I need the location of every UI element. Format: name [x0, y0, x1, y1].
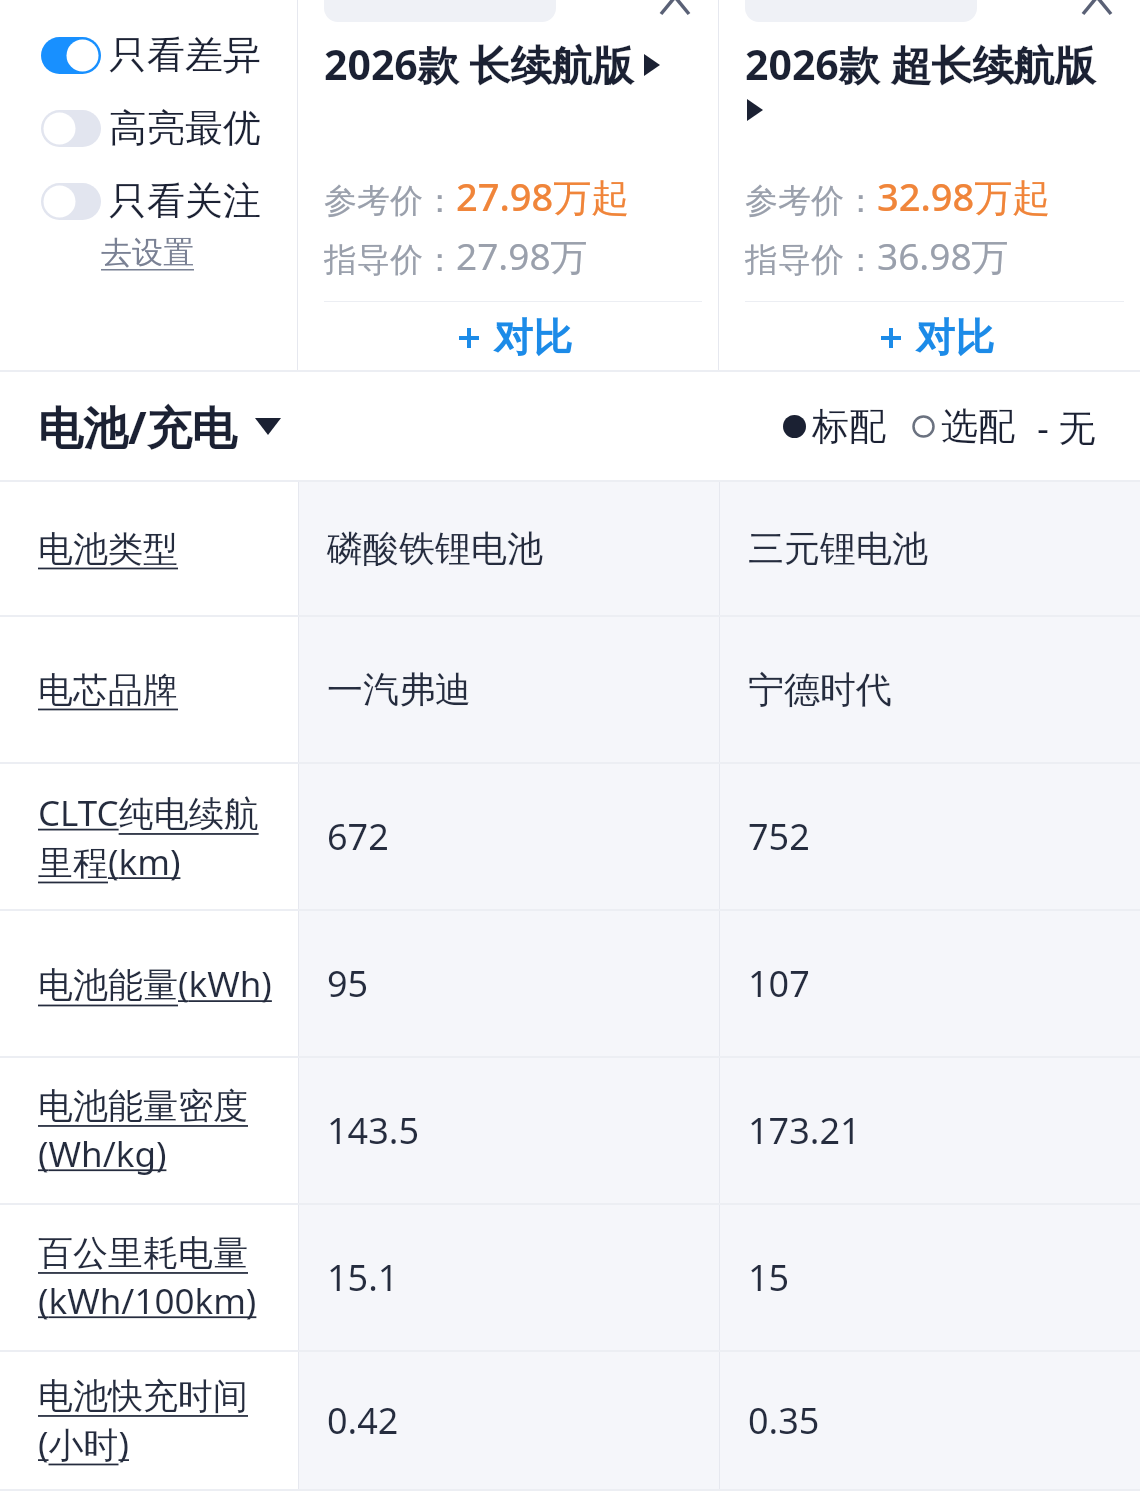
staticText: - 无 — [1037, 401, 1096, 452]
button[interactable]: 关闭 — [652, 0, 698, 46]
staticText: 高亮最优 — [109, 104, 261, 152]
staticText: 27.98万起 — [456, 170, 630, 222]
staticText: 对比 — [916, 313, 994, 362]
staticText: 15 — [748, 1253, 790, 1302]
staticText: 百公里耗电量(kWh/100km) — [38, 1231, 286, 1324]
staticText: 电池/充电 — [38, 396, 237, 457]
button[interactable]: 电池类型 — [0, 482, 298, 615]
button[interactable]: 电池快充时间(小时) — [0, 1352, 298, 1489]
staticText: 电池快充时间(小时) — [38, 1374, 286, 1467]
button[interactable]: 高亮最优 — [41, 104, 261, 152]
staticText: 磷酸铁锂电池 — [327, 526, 543, 571]
staticText: 0.35 — [748, 1396, 820, 1445]
button[interactable]: 电池能量(kWh) — [0, 911, 298, 1056]
staticText: 752 — [748, 812, 810, 861]
staticText: 只看差异 — [109, 31, 261, 79]
staticText: 对比 — [494, 313, 572, 362]
staticText: 选配 — [941, 403, 1015, 450]
staticText: 宁德时代 — [748, 667, 892, 712]
staticText: 一汽弗迪 — [327, 667, 471, 712]
staticText: 只看关注 — [109, 177, 261, 225]
button[interactable]: CLTC纯电续航里程(km) — [0, 764, 298, 909]
button[interactable]: 百公里耗电量(kWh/100km) — [0, 1205, 298, 1350]
button[interactable]: 只看关注 — [41, 177, 261, 225]
staticText: 107 — [748, 959, 810, 1008]
staticText: 32.98万起 — [877, 170, 1051, 222]
staticText: 2026款 超长续航版 — [745, 36, 1096, 92]
staticText: 672 — [327, 812, 389, 861]
button[interactable]: 2026款 超长续航版 — [745, 36, 1124, 92]
button[interactable]: 对比 — [324, 302, 702, 372]
staticText: 指导价： — [745, 239, 877, 281]
staticText: 27.98万 — [456, 230, 588, 281]
staticText: 参考价： — [324, 180, 456, 222]
button[interactable]: 电芯品牌 — [0, 617, 298, 762]
staticText: 标配 — [812, 403, 886, 450]
staticText: 173.21 — [748, 1106, 861, 1155]
staticText: 三元锂电池 — [748, 526, 928, 571]
staticText: 电池能量密度(Wh/kg) — [38, 1084, 286, 1177]
staticText: 143.5 — [327, 1106, 420, 1155]
staticText: 0.42 — [327, 1396, 399, 1445]
button[interactable]: 对比 — [745, 302, 1124, 372]
staticText: 36.98万 — [877, 230, 1009, 281]
button[interactable]: 去设置 — [101, 233, 194, 272]
staticText: 15.1 — [327, 1253, 399, 1302]
button[interactable]: 只看差异 — [41, 31, 261, 79]
button[interactable]: 电池能量密度(Wh/kg) — [0, 1058, 298, 1203]
staticText: 电芯品牌 — [38, 668, 178, 712]
staticText: 电池类型 — [38, 527, 178, 571]
staticText: 参考价： — [745, 180, 877, 222]
staticText: 95 — [327, 959, 369, 1008]
staticText: 指导价： — [324, 239, 456, 281]
button[interactable]: 电池/充电 — [38, 396, 281, 457]
button[interactable]: 关闭 — [1074, 0, 1120, 46]
staticText: CLTC纯电续航里程(km) — [38, 789, 286, 885]
button[interactable]: 2026款 长续航版 — [324, 36, 702, 92]
staticText: 去设置 — [101, 233, 194, 272]
staticText: 电池能量(kWh) — [38, 960, 272, 1008]
staticText: 2026款 长续航版 — [324, 36, 634, 92]
